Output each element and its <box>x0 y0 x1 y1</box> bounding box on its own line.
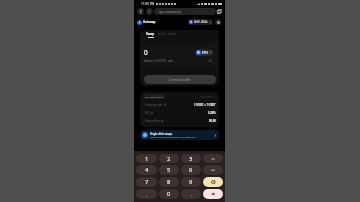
staticText: 1 USDC = 1 USDT <box>194 103 216 107</box>
button[interactable]: . <box>181 189 201 199</box>
staticText: 0 <box>167 190 171 198</box>
button[interactable]: Single click swaps <box>142 130 217 140</box>
staticText: Single click swaps <box>150 132 173 135</box>
button[interactable]: Tabs <box>217 9 222 14</box>
staticText: You will receive <box>145 95 163 98</box>
staticText: Network fee <box>145 119 160 123</box>
staticText: ETH <box>202 51 208 55</box>
button[interactable]: Back <box>137 8 144 15</box>
staticText: Connect wallet <box>169 78 191 82</box>
staticText: 7 <box>145 178 149 186</box>
staticText: 9 <box>189 178 193 186</box>
staticText: 0x1f...9b2c <box>194 20 208 24</box>
button[interactable]: 0 <box>159 189 179 199</box>
staticText: 4 <box>145 166 149 174</box>
button[interactable]: Menu <box>215 19 221 25</box>
staticText: Uniswap <box>143 20 156 24</box>
staticText: 6 <box>189 166 193 174</box>
staticText: APY <box>145 111 150 115</box>
button[interactable]: Delete <box>203 177 223 187</box>
button[interactable]: Connect wallet <box>144 75 216 84</box>
staticText: 8 <box>167 178 171 186</box>
button[interactable]: 2 <box>159 154 179 163</box>
button[interactable]: , <box>136 189 157 199</box>
staticText: , <box>146 192 147 197</box>
staticText: app.uniswap.org <box>159 10 182 14</box>
staticText: 11:50 PM <box>141 2 155 6</box>
button[interactable]: 7 <box>136 177 157 187</box>
staticText: $0 <box>209 59 213 63</box>
staticText: 5.20% <box>208 111 216 115</box>
button[interactable]: 4 <box>136 165 157 175</box>
staticText: 5 <box>167 166 171 174</box>
button[interactable]: Limit <box>158 32 166 36</box>
button[interactable]: 6 <box>181 165 201 175</box>
button[interactable]: Uniswap <box>137 18 156 26</box>
button[interactable]: 3 <box>181 154 201 163</box>
staticText: Swap <box>146 32 155 36</box>
staticText: estimated <box>201 95 214 99</box>
staticText: 1 <box>145 155 149 163</box>
button[interactable]: You will receive <box>145 95 163 98</box>
button[interactable]: 5 <box>159 165 179 175</box>
button[interactable]: 0x1f...9b2c <box>189 19 212 25</box>
staticText: Balance: 0.00 ETH <box>144 59 167 63</box>
staticText: 0 <box>144 48 148 57</box>
button[interactable]: Forward <box>146 8 153 15</box>
staticText: 3 <box>189 155 193 163</box>
button[interactable]: Space <box>203 165 223 175</box>
staticText: Exchange rate <box>145 103 163 107</box>
button[interactable]: Minus <box>203 154 223 163</box>
button[interactable]: ETH <box>196 49 212 56</box>
button[interactable]: 9 <box>181 177 201 187</box>
button[interactable]: Swap <box>146 32 155 38</box>
staticText: Swap your favourite tokens in a single t… <box>150 136 196 139</box>
staticText: $0.86 <box>209 119 216 123</box>
button[interactable]: Max <box>168 60 173 62</box>
button[interactable]: 1 <box>136 154 157 163</box>
button[interactable]: Send <box>168 32 176 36</box>
button[interactable]: app.uniswap.org <box>154 8 216 15</box>
staticText: . <box>191 192 192 197</box>
button[interactable]: 8 <box>159 177 179 187</box>
staticText: 2 <box>167 155 171 163</box>
button[interactable]: Enter <box>203 189 223 199</box>
